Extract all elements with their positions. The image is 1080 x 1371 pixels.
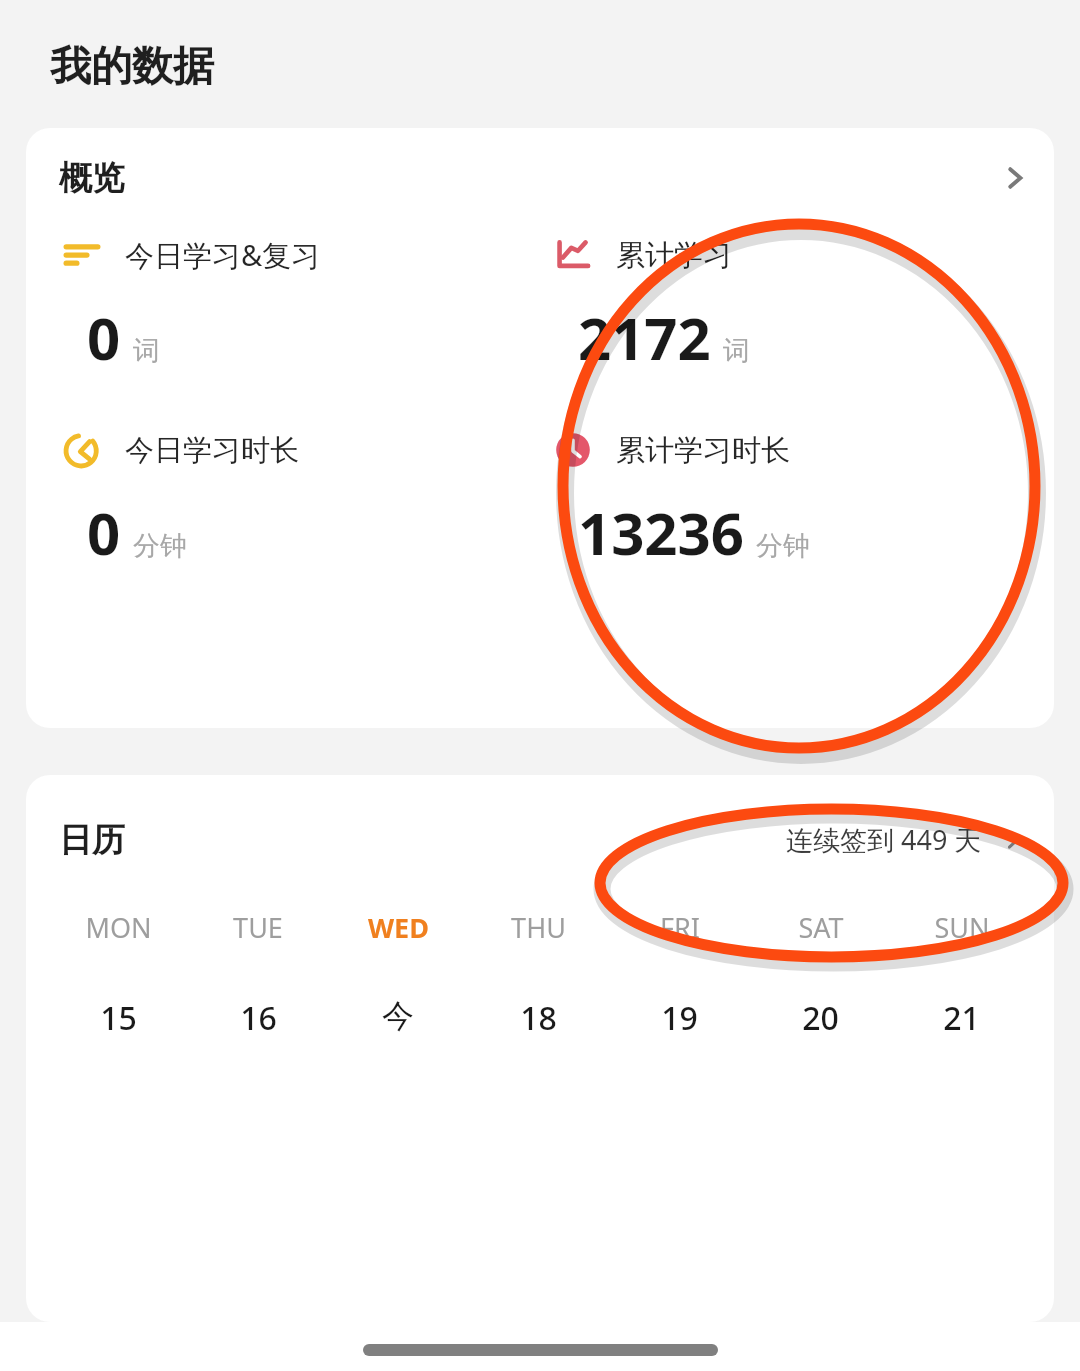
staticText: 今 xyxy=(382,996,414,1036)
staticText: 20 xyxy=(802,996,839,1040)
staticText: 19 xyxy=(661,996,698,1040)
staticText: SAT xyxy=(798,909,844,946)
button[interactable]: 16 xyxy=(188,990,328,1046)
staticText: 2172 xyxy=(578,298,711,377)
staticText: SUN xyxy=(934,909,990,946)
staticText: 词 xyxy=(133,334,160,368)
button[interactable]: 20 xyxy=(750,990,891,1046)
staticText: 我的数据 xyxy=(50,41,214,93)
button[interactable]: 19 xyxy=(609,990,750,1046)
staticText: FRI xyxy=(660,909,700,946)
staticText: THU xyxy=(511,909,566,946)
staticText: 累计学习 xyxy=(616,237,732,274)
staticText: 16 xyxy=(240,996,277,1040)
button[interactable]: 21 xyxy=(891,990,1032,1046)
staticText: 分钟 xyxy=(756,529,810,563)
staticText: TUE xyxy=(233,909,283,946)
staticText: 分钟 xyxy=(133,529,187,563)
staticText: 今日学习&复习 xyxy=(125,235,321,275)
button[interactable]: 18 xyxy=(468,990,609,1046)
staticText: 21 xyxy=(943,996,980,1040)
staticText: 15 xyxy=(100,996,137,1040)
button[interactable]: 概览 xyxy=(26,128,1054,728)
button[interactable]: 今 xyxy=(328,990,468,1042)
staticText: WED xyxy=(368,909,429,946)
staticText: 今日学习时长 xyxy=(125,432,299,469)
staticText: 累计学习时长 xyxy=(616,432,790,469)
staticText: 连续签到 449 天 xyxy=(786,821,982,858)
staticText: 0 xyxy=(87,493,121,572)
staticText: 词 xyxy=(723,334,750,368)
other: 查看概览详情 xyxy=(998,161,1032,195)
button[interactable]: 15 xyxy=(48,990,188,1046)
button[interactable]: 连续签到 449 天 xyxy=(782,815,1032,864)
staticText: MON xyxy=(85,909,152,946)
staticText: 13236 xyxy=(578,493,744,572)
staticText: 日历 xyxy=(59,819,125,861)
staticText: 0 xyxy=(87,298,121,377)
staticText: 18 xyxy=(520,996,557,1040)
staticText: 概览 xyxy=(59,157,125,199)
